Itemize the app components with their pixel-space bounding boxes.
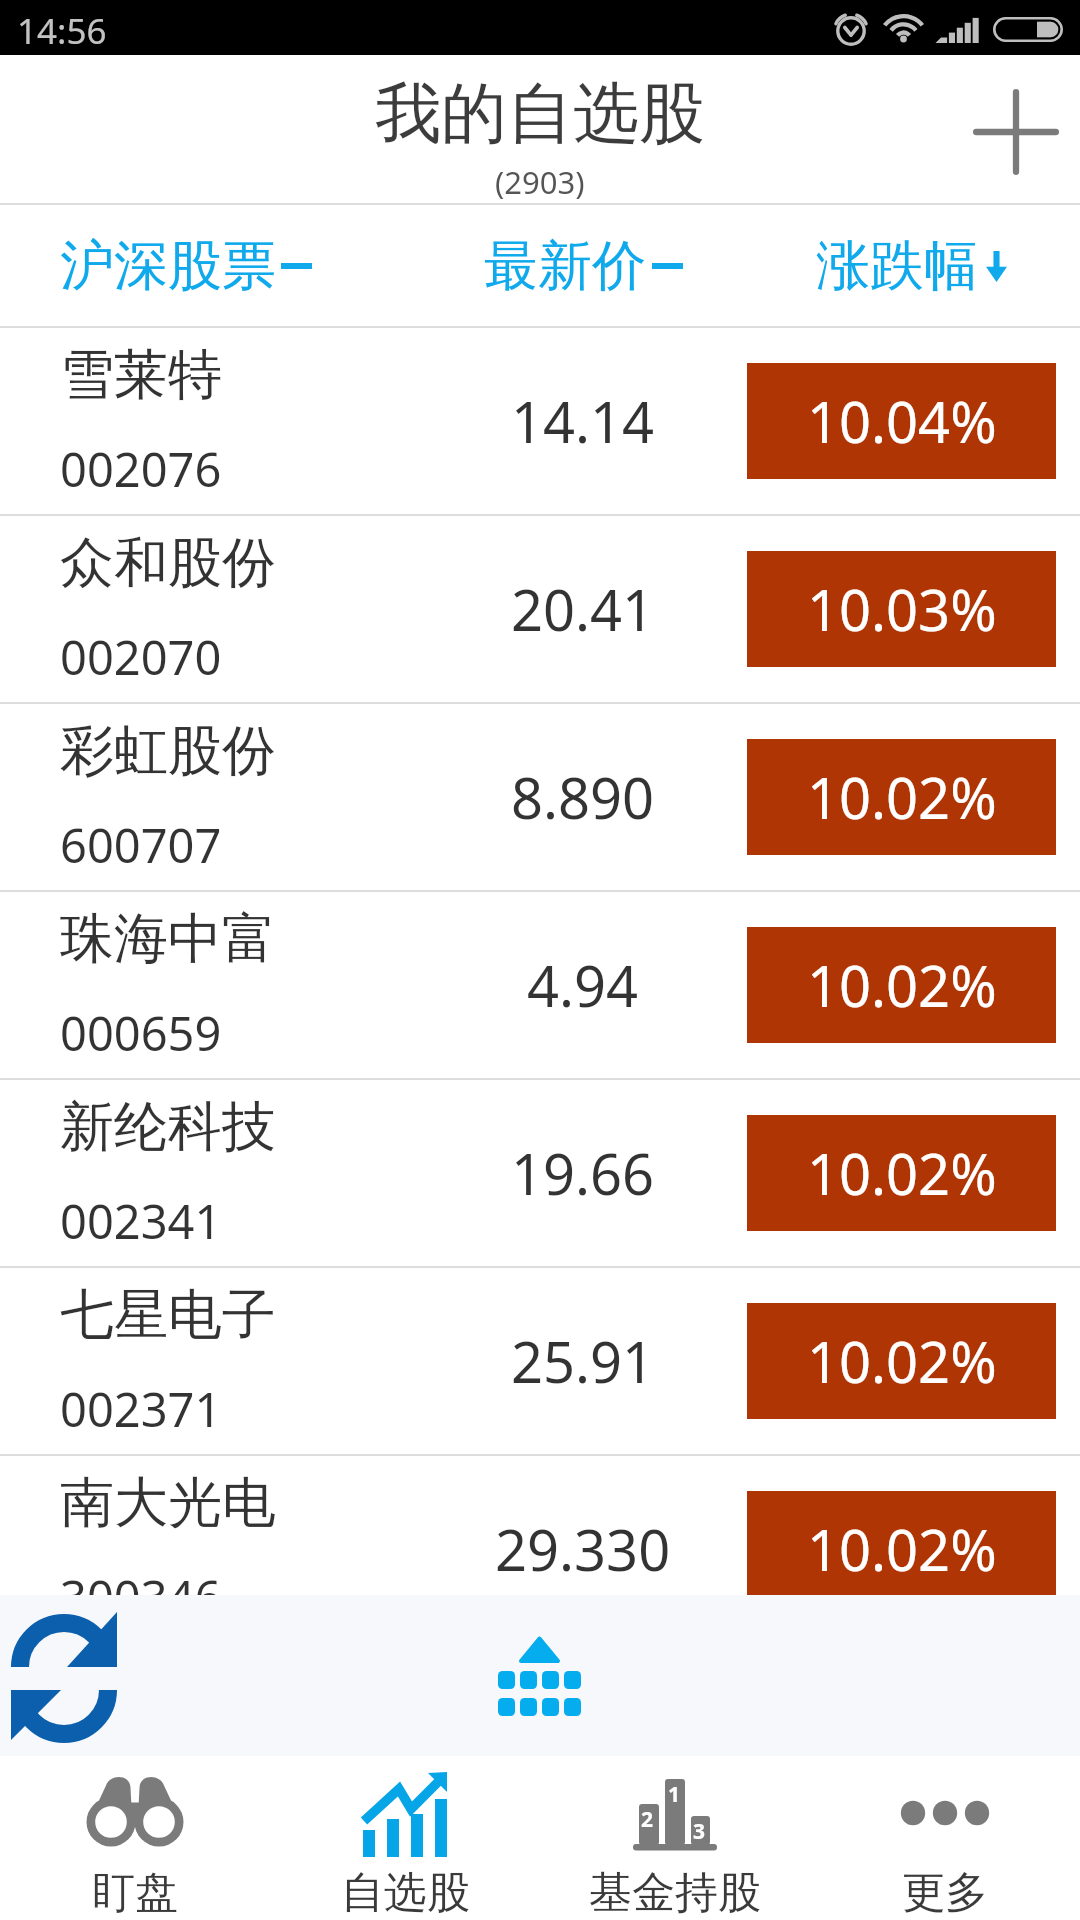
staticText: 002341 [60, 1189, 222, 1253]
button[interactable]: 最新价 [440, 205, 726, 326]
staticText: 4.94 [527, 947, 639, 1023]
staticText: 我的自选股 [375, 72, 705, 155]
staticText: 珠海中富 [60, 905, 276, 973]
staticText: 10.02% [807, 1511, 997, 1587]
staticText: 3 [693, 1817, 706, 1846]
button[interactable]: 新纶科技 [0, 1080, 1080, 1266]
staticText: 8.890 [511, 759, 655, 835]
button[interactable]: 七星电子 [0, 1268, 1080, 1454]
staticText: 南大光电 [60, 1469, 276, 1537]
button[interactable]: Add [950, 66, 1080, 198]
staticText: 14:56 [17, 7, 107, 55]
button[interactable]: 雪莱特 [0, 328, 1080, 514]
staticText: 300346 [60, 1565, 222, 1595]
button[interactable]: 彩虹股份 [0, 704, 1080, 890]
staticText: 002371 [60, 1377, 222, 1441]
staticText: 19.66 [511, 1135, 655, 1211]
staticText: 10.04% [807, 383, 997, 459]
staticText: 更多 [902, 1866, 988, 1920]
staticText: (2903) [495, 161, 585, 203]
staticText: 002076 [60, 437, 222, 501]
staticText: 000659 [60, 1001, 222, 1065]
button[interactable]: 1 [540, 1756, 810, 1920]
button[interactable]: 自选股 [270, 1756, 540, 1920]
staticText: 25.91 [511, 1323, 655, 1399]
staticText: 600707 [60, 813, 222, 877]
button[interactable]: 珠海中富 [0, 892, 1080, 1078]
staticText: 2 [641, 1805, 654, 1834]
button[interactable]: 南大光电 [0, 1456, 1080, 1595]
staticText: 最新价 [484, 232, 646, 300]
staticText: 10.02% [807, 1323, 997, 1399]
staticText: 1 [668, 1780, 681, 1809]
staticText: 10.02% [807, 759, 997, 835]
button[interactable]: 更多 [810, 1756, 1080, 1920]
staticText: 29.330 [495, 1511, 671, 1587]
staticText: 彩虹股份 [60, 717, 276, 785]
staticText: 众和股份 [60, 529, 276, 597]
button[interactable]: Refresh [0, 1601, 128, 1751]
button[interactable]: 盯盘 [0, 1756, 270, 1920]
button[interactable]: 众和股份 [0, 516, 1080, 702]
staticText: 自选股 [341, 1866, 470, 1920]
staticText: 涨跌幅 [816, 232, 978, 300]
button[interactable]: 沪深股票 [0, 205, 440, 326]
staticText: 20.41 [511, 571, 655, 647]
staticText: 10.02% [807, 947, 997, 1023]
staticText: 沪深股票 [60, 232, 276, 300]
staticText: 新纶科技 [60, 1093, 276, 1161]
staticText: 002070 [60, 625, 222, 689]
staticText: 10.03% [807, 571, 997, 647]
button[interactable]: 涨跌幅 [726, 205, 1080, 326]
button[interactable]: Keyboard [475, 1611, 605, 1741]
staticText: 10.02% [807, 1135, 997, 1211]
staticText: 14.14 [511, 383, 655, 459]
staticText: 七星电子 [60, 1281, 276, 1349]
staticText: 基金持股 [589, 1866, 761, 1920]
staticText: 盯盘 [92, 1866, 178, 1920]
staticText: 雪莱特 [60, 341, 222, 409]
